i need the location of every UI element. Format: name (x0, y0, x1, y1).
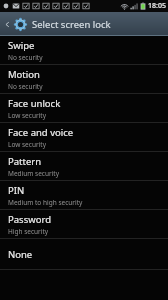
button[interactable]: Pattern (0, 152, 168, 181)
staticText: No security (8, 53, 43, 62)
staticText: 18:05 (148, 1, 166, 11)
staticText: Pattern (8, 155, 42, 168)
staticText: Low security (8, 140, 46, 149)
staticText: High security (8, 227, 49, 236)
staticText: Swipe (8, 39, 35, 52)
button[interactable]: Face unlock (0, 94, 168, 123)
button[interactable]: Face and voice (0, 123, 168, 152)
staticText: Medium security (8, 169, 59, 178)
staticText: No security (8, 82, 43, 91)
button[interactable]: Motion (0, 65, 168, 94)
staticText: Face and voice (8, 126, 74, 139)
staticText: Select screen lock (32, 18, 111, 31)
staticText: Password (8, 213, 51, 226)
button[interactable]: Swipe (0, 36, 168, 65)
button[interactable]: Navigate up (0, 12, 32, 36)
staticText: Face unlock (8, 97, 61, 110)
button[interactable]: Password (0, 210, 168, 239)
button[interactable]: PIN (0, 181, 168, 210)
staticText: PIN (8, 184, 25, 197)
staticText: Medium to high security (8, 198, 83, 207)
staticText: Low security (8, 111, 46, 120)
staticText: Motion (8, 68, 40, 81)
button[interactable]: None (0, 239, 168, 270)
staticText: None (8, 248, 33, 261)
